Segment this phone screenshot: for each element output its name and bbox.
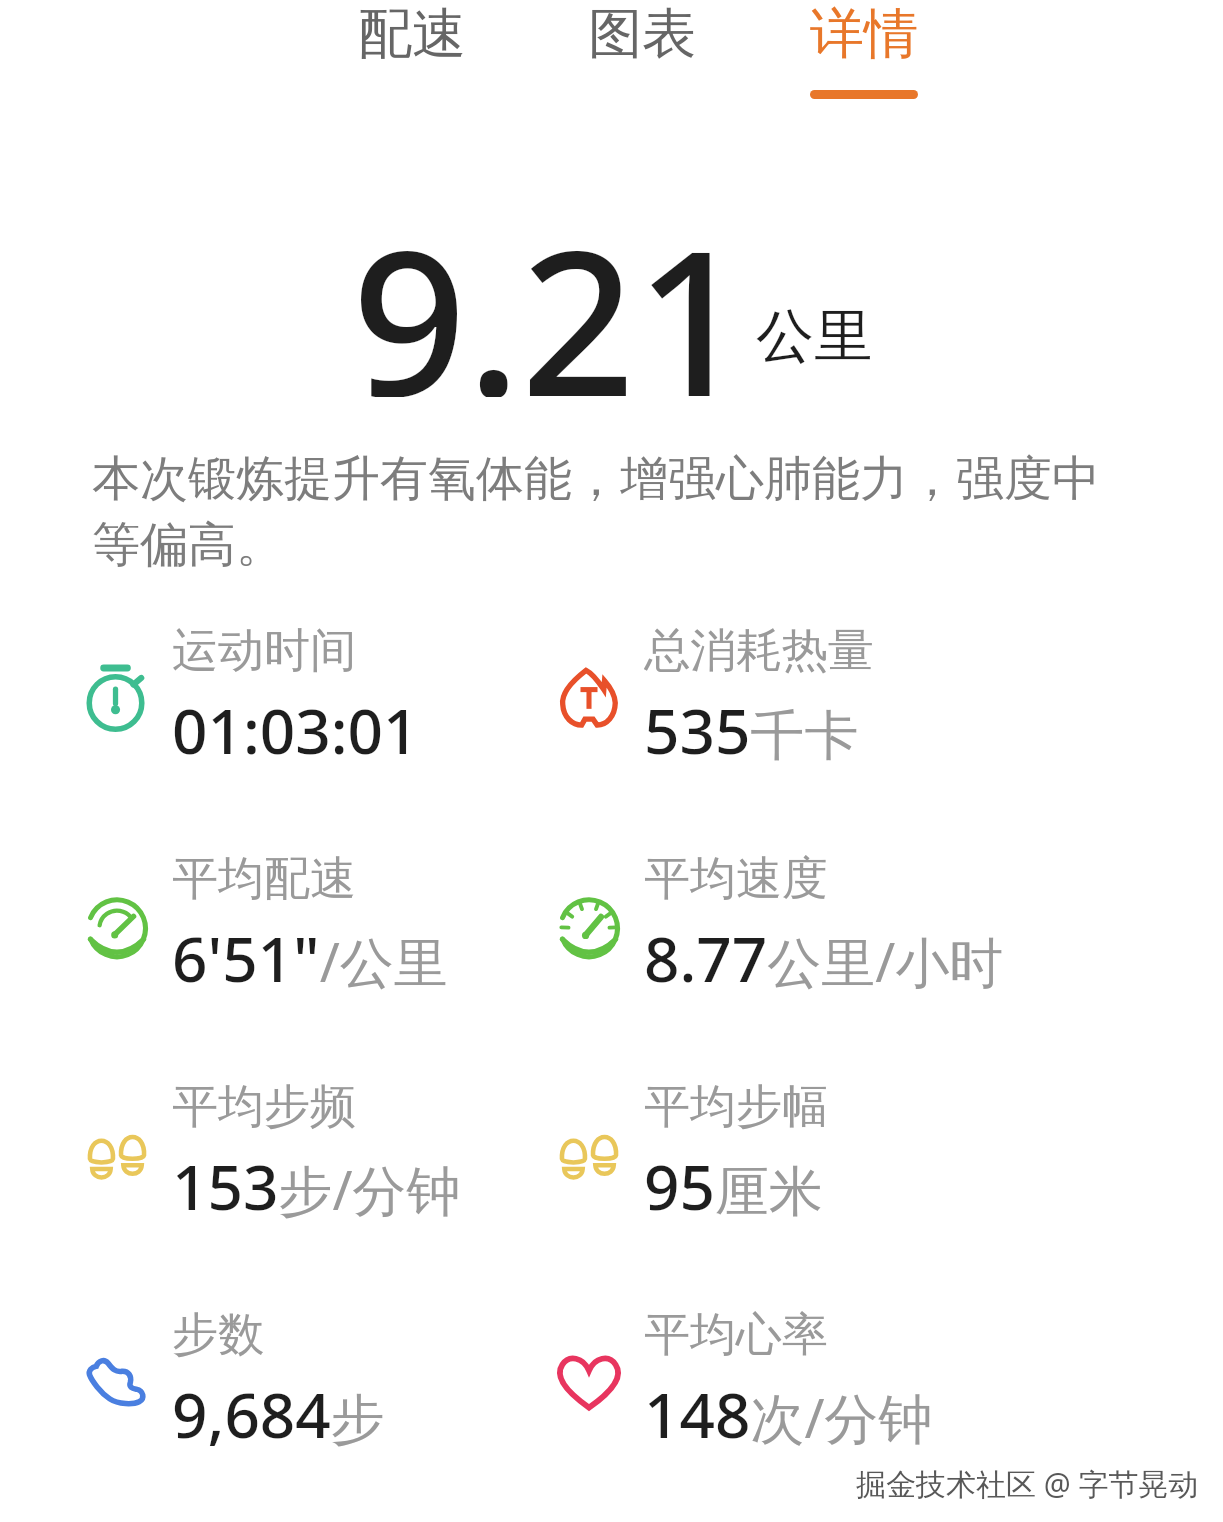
staticText: 9,684步 (172, 1372, 385, 1456)
staticText: 公里 (756, 300, 872, 373)
staticText: 535千卡 (644, 688, 859, 772)
staticText: 01:03:01 (172, 688, 419, 772)
staticText: 6'51"/公里 (172, 916, 448, 1000)
staticText: 平均步频 (172, 1078, 356, 1136)
button[interactable]: 总消耗热量 (550, 622, 874, 772)
button[interactable]: 平均步幅 (550, 1078, 828, 1228)
staticText: 平均速度 (644, 850, 828, 908)
button[interactable]: 平均速度 (550, 850, 1004, 1000)
button[interactable]: 图表 (582, 0, 702, 90)
staticText: 运动时间 (172, 622, 356, 680)
staticText: 9.21 (352, 182, 750, 397)
staticText: 平均心率 (644, 1306, 828, 1364)
button[interactable]: 配速 (352, 0, 472, 90)
staticText: 95厘米 (644, 1144, 823, 1228)
staticText: 148次/分钟 (644, 1372, 933, 1456)
button[interactable]: 步数 (78, 1306, 385, 1456)
staticText: 步数 (172, 1306, 264, 1364)
button[interactable]: 详情 (804, 0, 924, 99)
staticText: 总消耗热量 (644, 622, 874, 680)
staticText: 配速 (358, 0, 466, 68)
staticText: 本次锻炼提升有氧体能，增强心肺能力，强度中等偏高。 (92, 449, 1133, 576)
staticText: 掘金技术社区 @ 字节晃动 (856, 1463, 1199, 1504)
staticText: 8.77公里/小时 (644, 916, 1004, 1000)
staticText: 153步/分钟 (172, 1144, 461, 1228)
button[interactable]: 平均心率 (550, 1306, 933, 1456)
staticText: 平均步幅 (644, 1078, 828, 1136)
staticText: 平均配速 (172, 850, 356, 908)
button[interactable]: 运动时间 (78, 622, 419, 772)
button[interactable]: 平均步频 (78, 1078, 461, 1228)
staticText: 详情 (810, 0, 918, 68)
button[interactable]: 平均配速 (78, 850, 448, 1000)
staticText: 图表 (588, 0, 696, 68)
